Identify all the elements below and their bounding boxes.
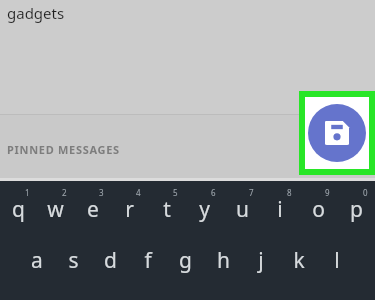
button[interactable]: 8	[261, 187, 299, 231]
staticText: d	[104, 246, 117, 275]
staticText: 4	[136, 187, 141, 198]
button[interactable]: 2	[37, 187, 74, 231]
button[interactable]: d	[92, 244, 129, 288]
staticText: y	[199, 195, 210, 224]
button[interactable]: h	[204, 244, 242, 288]
staticText: f	[144, 246, 152, 275]
staticText: e	[87, 195, 99, 224]
staticText: s	[68, 246, 79, 275]
staticText: 1	[25, 187, 30, 198]
staticText: g	[179, 246, 192, 275]
button[interactable]: PINNED MESSAGES	[0, 115, 375, 178]
staticText: j	[258, 246, 264, 275]
staticText: 6	[211, 187, 216, 198]
staticText: w	[47, 195, 64, 224]
button[interactable]: 9	[299, 187, 337, 231]
staticText: h	[217, 246, 230, 275]
button[interactable]: Save	[308, 104, 366, 162]
button[interactable]: f	[129, 244, 166, 288]
button[interactable]: j	[242, 244, 280, 288]
staticText: 9	[325, 187, 330, 198]
staticText: PINNED MESSAGES	[7, 142, 120, 157]
staticText: i	[277, 195, 283, 224]
staticText: 8	[287, 187, 292, 198]
button[interactable]: 1	[0, 187, 37, 231]
staticText: u	[236, 195, 249, 224]
button[interactable]: k	[280, 244, 318, 288]
staticText: k	[293, 246, 305, 275]
staticText: q	[12, 195, 25, 224]
staticText: r	[125, 195, 134, 224]
button[interactable]: 6	[185, 187, 223, 231]
button[interactable]: l	[318, 244, 356, 288]
staticText: t	[163, 195, 171, 224]
button[interactable]: s	[55, 244, 92, 288]
button[interactable]: g	[166, 244, 204, 288]
button[interactable]: 7	[223, 187, 261, 231]
button[interactable]: 5	[148, 187, 185, 231]
button[interactable]: gadgets	[7, 3, 65, 23]
staticText: 0	[363, 187, 368, 198]
button[interactable]: 0	[337, 187, 375, 231]
button[interactable]: 3	[74, 187, 111, 231]
staticText: 2	[62, 187, 67, 198]
staticText: p	[350, 195, 363, 224]
button[interactable]: a	[18, 244, 55, 288]
staticText: o	[312, 195, 325, 224]
staticText: 5	[173, 187, 178, 198]
staticText: l	[334, 246, 340, 275]
staticText: 3	[99, 187, 104, 198]
button[interactable]: 4	[111, 187, 148, 231]
staticText: a	[31, 246, 43, 275]
staticText: 7	[249, 187, 254, 198]
